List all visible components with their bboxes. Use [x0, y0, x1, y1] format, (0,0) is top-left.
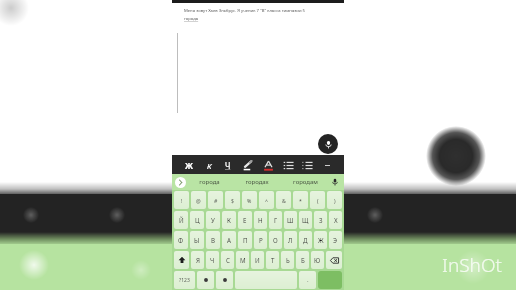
button[interactable]: Ю [311, 251, 324, 269]
button[interactable]: ) [327, 191, 342, 209]
button[interactable]: Н [254, 211, 267, 229]
staticText: Х [334, 216, 338, 224]
staticText: города [184, 16, 199, 22]
button[interactable]: Б [296, 251, 309, 269]
staticText: А [227, 236, 231, 244]
staticText: $ [231, 197, 234, 204]
button[interactable]: М [236, 251, 249, 269]
button[interactable]: Shift [174, 251, 189, 269]
button[interactable]: города [186, 174, 233, 190]
button[interactable]: More [320, 158, 334, 172]
staticText: & [282, 197, 286, 204]
staticText: . [307, 276, 309, 284]
staticText: Й [179, 216, 184, 224]
staticText: InShOt [442, 252, 502, 278]
button[interactable]: С [221, 251, 234, 269]
staticText: Ж [185, 160, 193, 171]
button[interactable]: городах [233, 174, 281, 190]
staticText: О [273, 236, 278, 244]
staticText: Э [333, 236, 338, 244]
button[interactable]: Х [329, 211, 342, 229]
staticText: Л [288, 236, 293, 244]
button[interactable]: Emoji [197, 271, 214, 289]
staticText: ^ [265, 197, 268, 204]
button[interactable]: Щ [299, 211, 312, 229]
button[interactable]: Expand suggestions [175, 177, 186, 188]
staticText: городах [245, 178, 269, 186]
button[interactable]: @ [191, 191, 206, 209]
button[interactable]: Я [191, 251, 204, 269]
staticText: Т [271, 256, 275, 264]
button[interactable]: ?123 [174, 271, 195, 289]
button[interactable]: Highlight [241, 158, 255, 172]
button[interactable]: Bulleted list [281, 158, 295, 172]
staticText: У [211, 216, 215, 224]
staticText: Ы [194, 236, 200, 244]
button[interactable]: Language [216, 271, 233, 289]
button[interactable]: Numbered list [300, 158, 314, 172]
staticText: Я [196, 256, 200, 264]
button[interactable]: Voice input [318, 134, 338, 154]
button[interactable]: Д [299, 231, 312, 249]
staticText: С [226, 256, 230, 264]
button[interactable]: Text color [261, 158, 275, 172]
button[interactable]: Е [238, 211, 252, 229]
button[interactable] [235, 271, 297, 289]
staticText: ( [317, 197, 319, 204]
staticText: Ч [210, 256, 215, 264]
button[interactable]: П [238, 231, 252, 249]
staticText: Д [303, 236, 308, 244]
staticText: городам [293, 178, 318, 186]
button[interactable]: И [251, 251, 264, 269]
button[interactable]: Voice typing [329, 176, 341, 188]
button[interactable]: Ж [314, 231, 327, 249]
staticText: Р [259, 236, 263, 244]
button[interactable]: Italic [202, 158, 216, 172]
button[interactable]: Ь [281, 251, 294, 269]
button[interactable]: Р [254, 231, 267, 249]
button[interactable]: У [206, 211, 220, 229]
staticText: В [211, 236, 216, 244]
button[interactable]: городам [281, 174, 329, 190]
staticText: ! [181, 197, 183, 204]
button[interactable]: Backspace [326, 251, 342, 269]
staticText: Ш [287, 216, 294, 224]
staticText: Ц [195, 216, 200, 224]
button[interactable]: $ [225, 191, 240, 209]
button[interactable]: Г [269, 211, 282, 229]
button[interactable]: В [206, 231, 220, 249]
button[interactable]: . [299, 271, 316, 289]
staticText: П [243, 236, 248, 244]
button[interactable]: # [208, 191, 223, 209]
staticText: М [240, 256, 246, 264]
staticText: Ю [314, 256, 321, 264]
button[interactable]: О [269, 231, 282, 249]
staticText: ?123 [179, 277, 190, 284]
button[interactable]: Ф [174, 231, 188, 249]
staticText: ) [334, 197, 336, 204]
button[interactable]: К [222, 211, 236, 229]
button[interactable]: Ы [190, 231, 204, 249]
button[interactable]: * [293, 191, 308, 209]
button[interactable]: З [314, 211, 327, 229]
staticText: Б [301, 256, 305, 264]
button[interactable]: Enter [318, 271, 342, 289]
button[interactable]: Ш [284, 211, 297, 229]
button[interactable]: Ч [206, 251, 219, 269]
button[interactable]: Bold [182, 158, 196, 172]
button[interactable]: & [276, 191, 291, 209]
staticText: Г [274, 216, 278, 224]
button[interactable]: % [242, 191, 257, 209]
button[interactable]: Й [174, 211, 188, 229]
button[interactable]: Ц [190, 211, 204, 229]
button[interactable]: Т [266, 251, 279, 269]
button[interactable]: ! [174, 191, 189, 209]
button[interactable]: А [222, 231, 236, 249]
button[interactable]: ^ [259, 191, 274, 209]
staticText: Ж [318, 236, 324, 244]
button[interactable]: Л [284, 231, 297, 249]
button[interactable]: Э [329, 231, 342, 249]
button[interactable]: ( [310, 191, 325, 209]
staticText: Ф [178, 236, 184, 244]
button[interactable]: Underline [221, 158, 235, 172]
